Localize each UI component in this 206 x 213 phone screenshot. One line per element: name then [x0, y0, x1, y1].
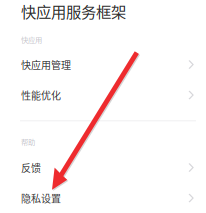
staticText: 反馈: [21, 160, 41, 175]
staticText: 性能优化: [21, 88, 61, 102]
staticText: 快应用管理: [21, 57, 71, 72]
button[interactable]: 反馈: [0, 152, 206, 183]
staticText: 快应用: [21, 34, 42, 45]
staticText: 隐私设置: [21, 191, 61, 205]
button[interactable]: 快应用管理: [0, 49, 206, 80]
staticText: 帮助: [21, 136, 35, 147]
button[interactable]: 性能优化: [0, 80, 206, 110]
staticText: 快应用服务框架: [21, 0, 126, 22]
button[interactable]: 隐私设置: [0, 183, 206, 213]
